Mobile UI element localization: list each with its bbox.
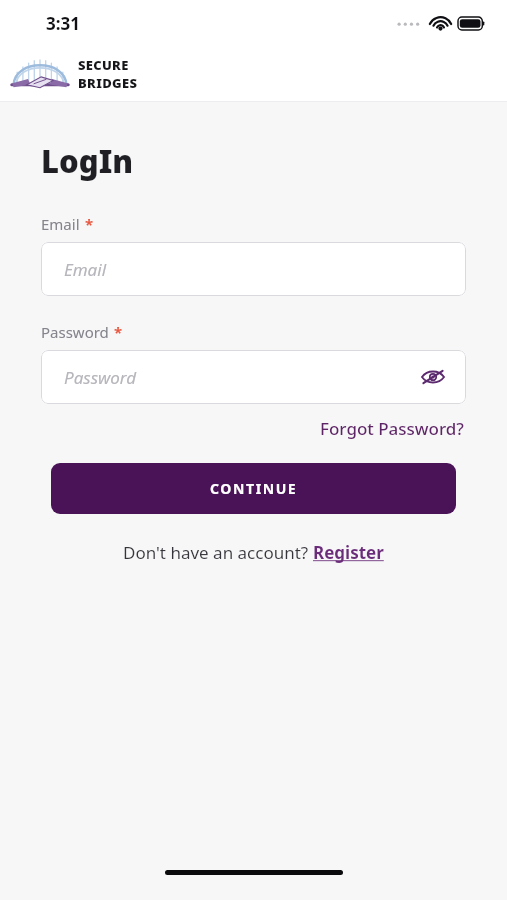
staticText: Forgot Password? [320, 417, 464, 440]
button[interactable]: Don't have an account? [121, 539, 386, 566]
staticText: LogIn [41, 140, 134, 182]
staticText: * [85, 214, 94, 234]
staticText: BRIDGES [78, 74, 138, 92]
staticText: Password [64, 366, 137, 389]
staticText: CONTINUE [210, 479, 298, 498]
button[interactable]: Forgot Password? [318, 414, 466, 443]
staticText: 3:31 [46, 12, 80, 35]
staticText: Register [313, 541, 384, 564]
staticText: Don't have an account? [123, 541, 313, 564]
button[interactable]: Show password [418, 362, 448, 392]
staticText: Email [64, 258, 107, 281]
button[interactable]: Email [41, 242, 466, 296]
button[interactable]: Password [41, 350, 466, 404]
staticText: SECURE [78, 56, 129, 74]
staticText: Email [41, 214, 80, 234]
staticText: Password [41, 322, 109, 342]
staticText: * [114, 322, 123, 342]
button[interactable]: CONTINUE [51, 463, 456, 514]
